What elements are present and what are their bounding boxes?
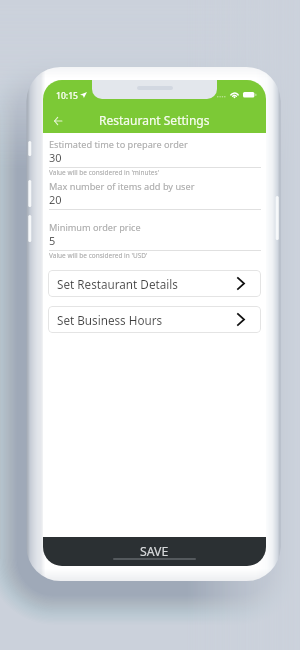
button[interactable]: SAVE	[43, 537, 266, 566]
staticText: Minimum order price	[49, 221, 141, 234]
staticText: Set Business Hours	[57, 312, 163, 328]
button[interactable]: Set Restaurant Details	[48, 270, 261, 297]
staticText: 30	[49, 150, 62, 165]
staticText: Value will be considered in 'minutes'	[49, 168, 160, 177]
staticText: 5	[49, 233, 56, 248]
staticText: Estimated time to prepare order	[49, 138, 188, 151]
button[interactable]: Set Business Hours	[48, 306, 261, 333]
staticText: Restaurant Settings	[99, 112, 210, 128]
staticText: 20	[49, 192, 62, 207]
staticText: Set Restaurant Details	[57, 276, 178, 292]
staticText: Value will be considered in 'USD'	[49, 251, 148, 260]
staticText: SAVE	[140, 543, 169, 560]
staticText: Max number of items add by user	[49, 180, 195, 193]
staticText: 10:15	[56, 90, 79, 102]
button[interactable]: Back	[45, 108, 71, 134]
